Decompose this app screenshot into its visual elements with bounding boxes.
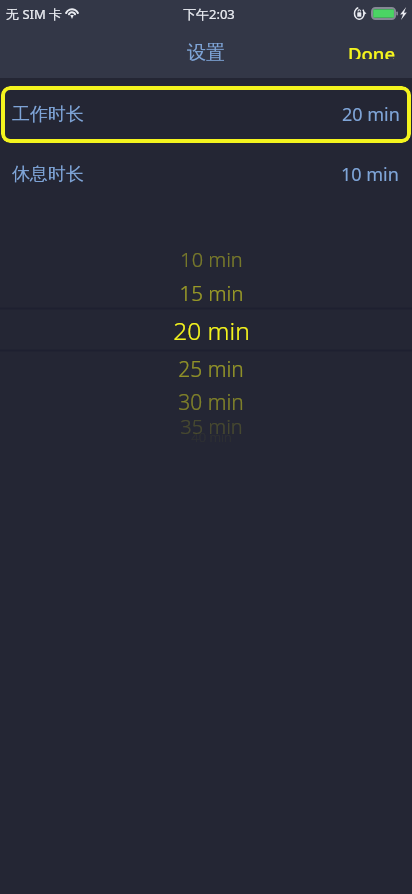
button[interactable]: 15 min: [5, 275, 412, 310]
staticText: 20 min: [342, 102, 400, 127]
staticText: 休息时长: [12, 163, 84, 186]
button[interactable]: 35 min: [5, 409, 412, 443]
staticText: 15 min: [179, 279, 244, 307]
button[interactable]: 40 min: [5, 426, 412, 448]
button[interactable]: 30 min: [5, 384, 412, 420]
staticText: 40 min: [191, 428, 232, 446]
staticText: Done: [348, 41, 396, 59]
staticText: 无 SIM 卡: [6, 5, 63, 23]
button[interactable]: 休息时长: [0, 146, 412, 202]
staticText: 设置: [187, 41, 225, 65]
other: Rotation lock: [354, 7, 366, 20]
button[interactable]: Done: [329, 36, 412, 64]
staticText: 工作时长: [12, 103, 84, 126]
staticText: 20 min: [173, 314, 250, 347]
staticText: 10 min: [180, 246, 243, 273]
staticText: 10 min: [341, 162, 399, 187]
button[interactable]: 20 min: [5, 309, 412, 351]
button[interactable]: 25 min: [5, 351, 412, 387]
staticText: 35 min: [180, 413, 243, 440]
staticText: 25 min: [178, 355, 244, 384]
staticText: 30 min: [178, 388, 244, 417]
button[interactable]: 10 min: [5, 242, 412, 276]
staticText: 下午2:03: [183, 5, 235, 23]
button[interactable]: 工作时长: [1, 86, 411, 143]
